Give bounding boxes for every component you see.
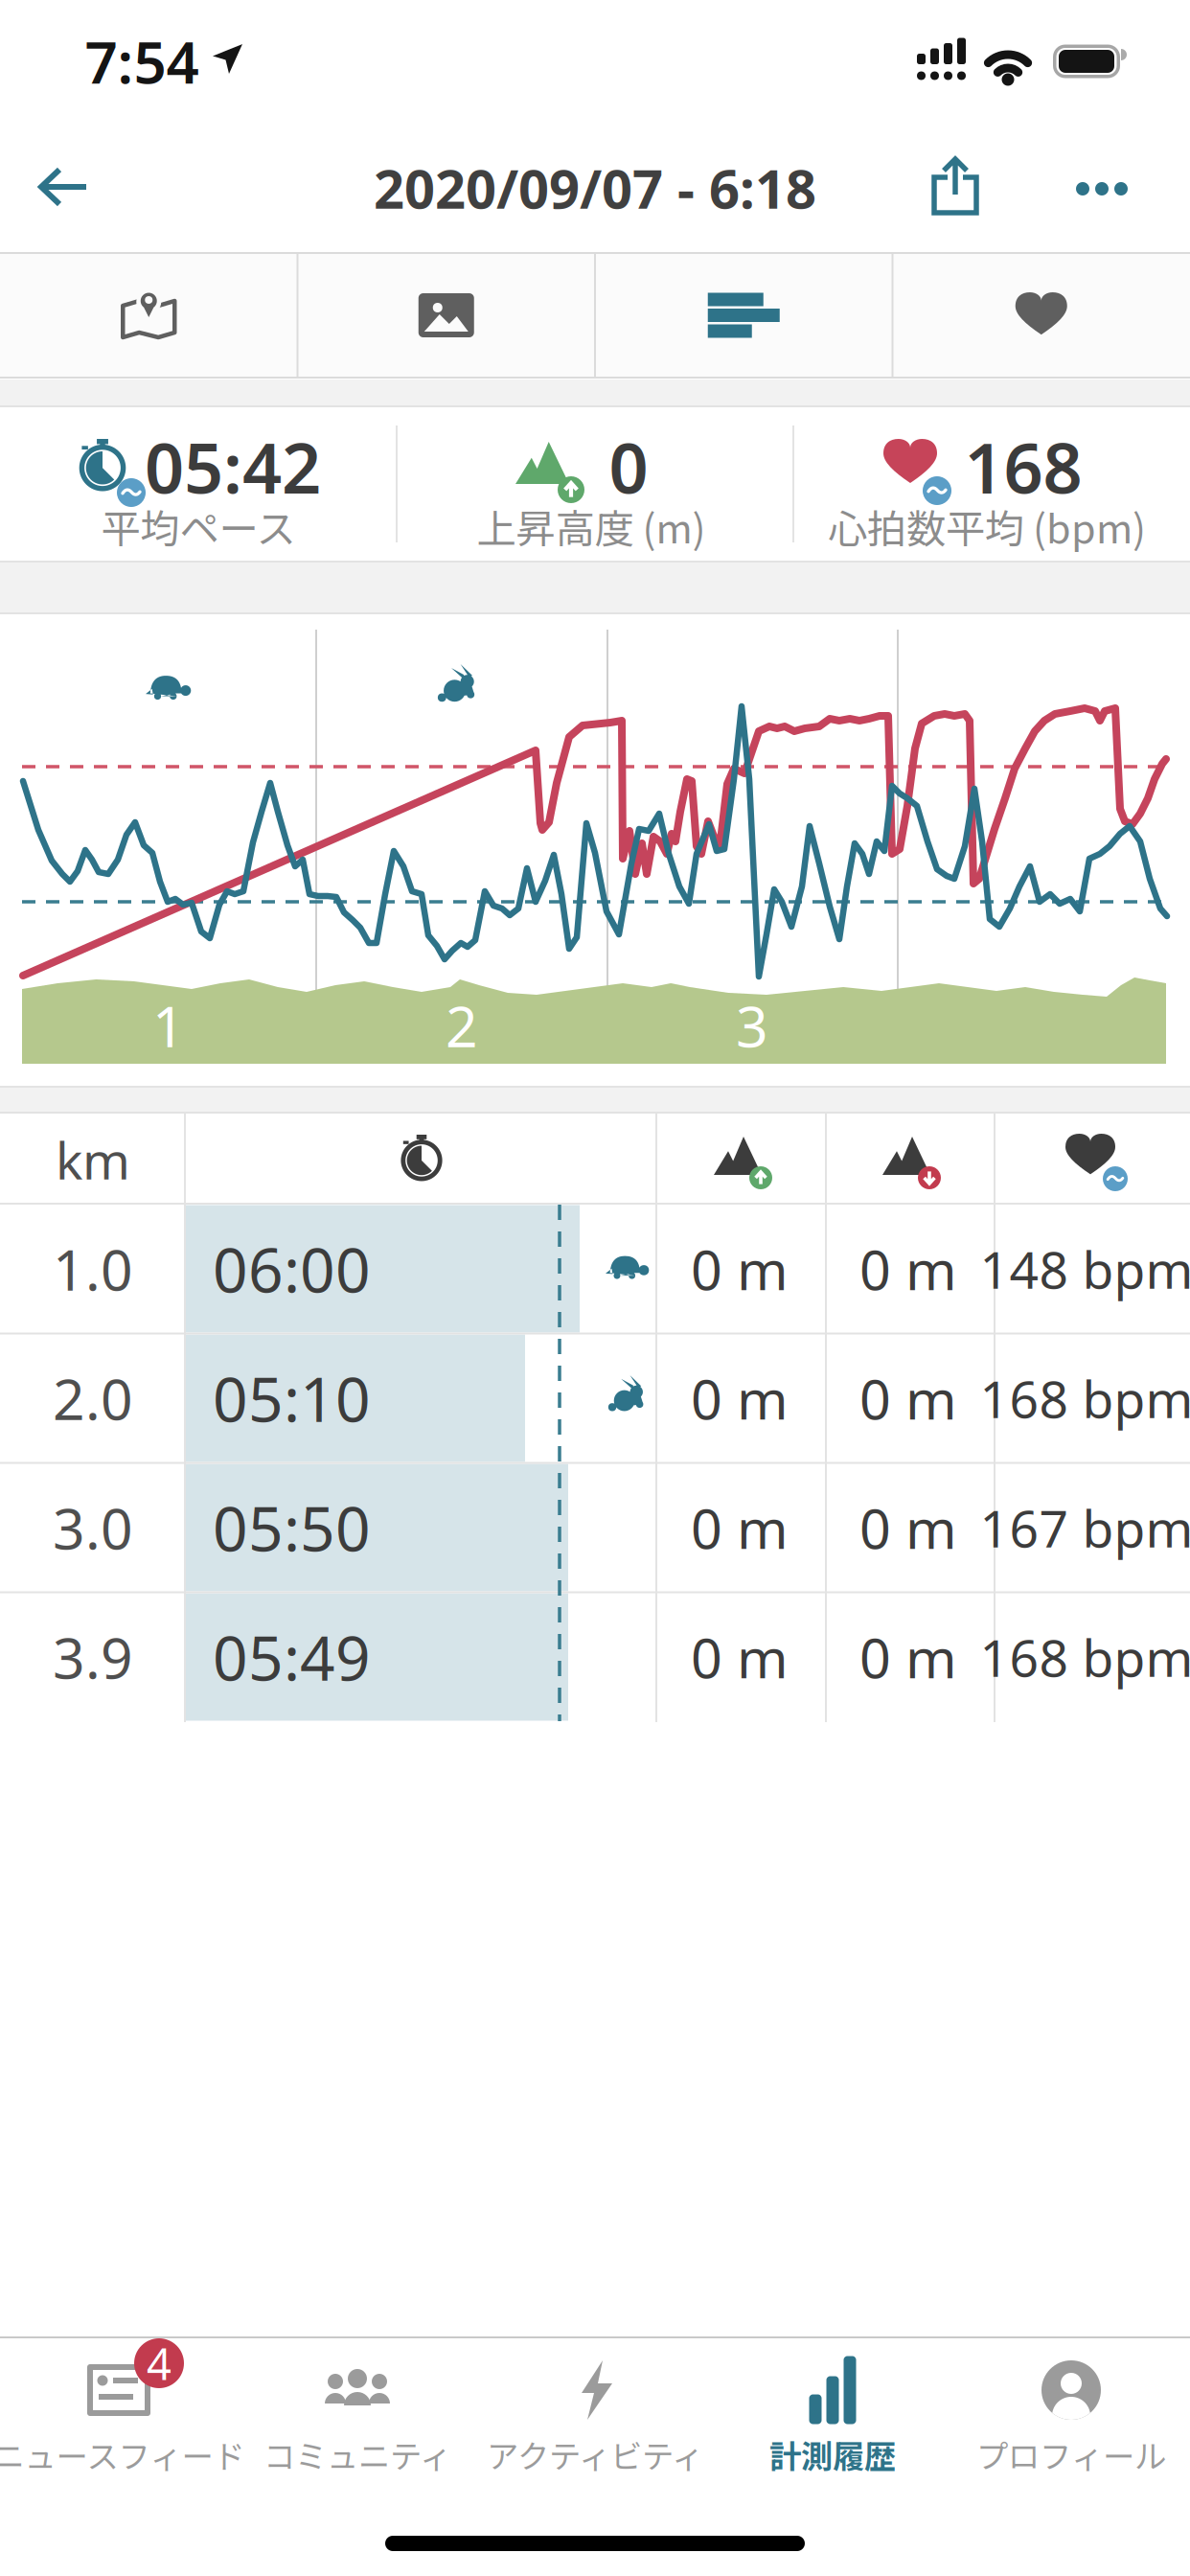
staticText: 0 m xyxy=(691,1232,789,1305)
staticText: 0 xyxy=(609,421,648,513)
staticText: 168 bpm xyxy=(980,1364,1190,1432)
button[interactable]: プロフィール xyxy=(952,2336,1190,2490)
button[interactable]: コミュニティ xyxy=(239,2336,476,2490)
staticText: 上昇高度 (m) xyxy=(477,497,706,555)
button[interactable]: Likes xyxy=(893,253,1190,378)
staticText: コミュニティ xyxy=(263,2431,451,2477)
staticText: 0 m xyxy=(859,1362,957,1435)
staticText: アクティビティ xyxy=(487,2431,703,2477)
button[interactable]: 計測履歴 xyxy=(714,2336,951,2490)
staticText: 05:10 xyxy=(213,1357,371,1439)
staticText: 0 m xyxy=(691,1620,789,1693)
staticText: 2.0 xyxy=(53,1361,133,1435)
staticText: 148 bpm xyxy=(980,1235,1190,1303)
staticText: 167 bpm xyxy=(980,1494,1190,1562)
button[interactable]: アクティビティ xyxy=(476,2336,714,2490)
button[interactable]: Share xyxy=(931,156,979,216)
staticText: 05:50 xyxy=(213,1487,371,1568)
button[interactable]: Map xyxy=(0,253,297,378)
staticText: 168 bpm xyxy=(980,1623,1190,1691)
staticText: 0 m xyxy=(859,1620,957,1693)
staticText: 3.9 xyxy=(53,1620,133,1694)
staticText: 1 xyxy=(152,988,185,1063)
button[interactable]: Stats xyxy=(595,253,892,378)
staticText: 05:42 xyxy=(145,421,321,513)
staticText: プロフィール xyxy=(976,2431,1166,2477)
button[interactable]: Back xyxy=(36,167,90,209)
staticText: 4 xyxy=(147,2334,172,2392)
staticText: 168 xyxy=(964,421,1082,513)
staticText: 計測履歴 xyxy=(769,2431,896,2477)
staticText: 7:54 xyxy=(85,23,199,100)
staticText: 平均ペース xyxy=(101,497,296,555)
staticText: 05:49 xyxy=(213,1616,371,1698)
staticText: 06:00 xyxy=(213,1228,371,1310)
staticText: 2 xyxy=(446,988,478,1063)
staticText: 3 xyxy=(736,988,768,1063)
staticText: 3.0 xyxy=(53,1490,133,1565)
button[interactable]: ニュースフィード xyxy=(0,2336,238,2490)
staticText: ニュースフィード xyxy=(0,2431,245,2477)
staticText: 2020/09/07 - 6:18 xyxy=(374,152,816,223)
staticText: km xyxy=(56,1126,130,1194)
staticText: 0 m xyxy=(691,1362,789,1435)
button[interactable]: Photos xyxy=(298,253,595,378)
button[interactable]: More xyxy=(1064,165,1140,213)
staticText: 0 m xyxy=(859,1232,957,1305)
staticText: 1.0 xyxy=(53,1231,133,1306)
staticText: 0 m xyxy=(691,1491,789,1564)
staticText: 心拍数平均 (bpm) xyxy=(828,497,1146,555)
staticText: 0 m xyxy=(859,1491,957,1564)
